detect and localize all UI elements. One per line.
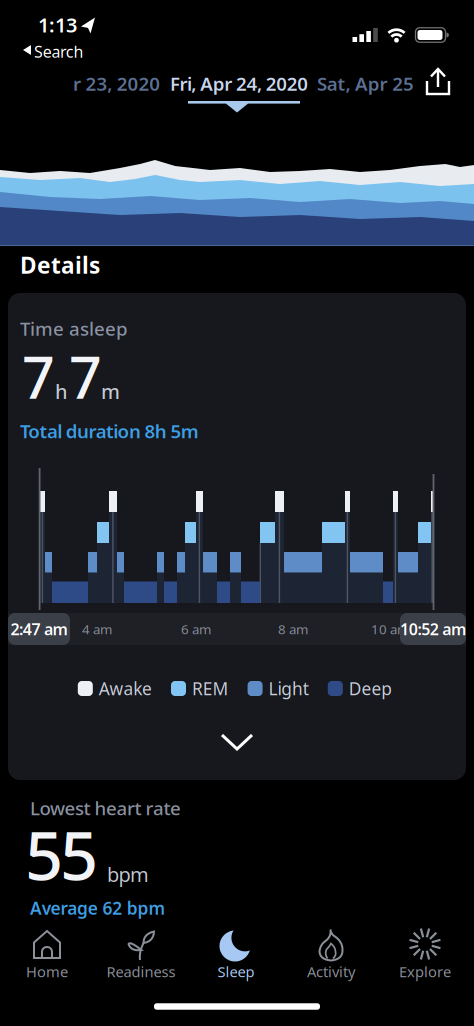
staticText: 55 bbox=[25, 810, 98, 898]
staticText: 10 am bbox=[371, 620, 409, 638]
staticText: 2:47 am bbox=[10, 618, 68, 640]
staticText: 7 bbox=[22, 338, 55, 415]
staticText: Activity bbox=[307, 962, 355, 981]
staticText: Awake bbox=[99, 677, 152, 700]
staticText: Explore bbox=[399, 962, 451, 981]
staticText: h bbox=[55, 378, 68, 405]
staticText: 10:52 am bbox=[400, 618, 466, 640]
staticText: 6 am bbox=[181, 620, 211, 638]
staticText: Lowest heart rate bbox=[30, 795, 181, 820]
staticText: Search bbox=[34, 41, 83, 62]
staticText: Deep bbox=[349, 677, 392, 700]
staticText: REM bbox=[192, 677, 229, 700]
staticText: 1:13 bbox=[38, 11, 77, 38]
staticText: Fri, Apr 24, 2020 bbox=[170, 71, 308, 96]
staticText: 8 am bbox=[278, 620, 308, 638]
staticText: Sat, Apr 25 bbox=[317, 71, 414, 96]
staticText: Home bbox=[26, 962, 68, 981]
staticText: Light bbox=[269, 677, 309, 700]
staticText: Details bbox=[20, 250, 100, 280]
staticText: Total duration 8h 5m bbox=[20, 418, 199, 443]
staticText: 4 am bbox=[82, 620, 112, 638]
staticText: 7 bbox=[69, 338, 102, 415]
staticText: m bbox=[101, 378, 120, 405]
staticText: bpm bbox=[107, 861, 149, 888]
staticText: Readiness bbox=[106, 962, 175, 981]
staticText: Average 62 bpm bbox=[30, 896, 165, 919]
staticText: r 23, 2020 bbox=[73, 71, 160, 96]
staticText: Time asleep bbox=[20, 316, 128, 341]
staticText: Sleep bbox=[217, 962, 254, 981]
